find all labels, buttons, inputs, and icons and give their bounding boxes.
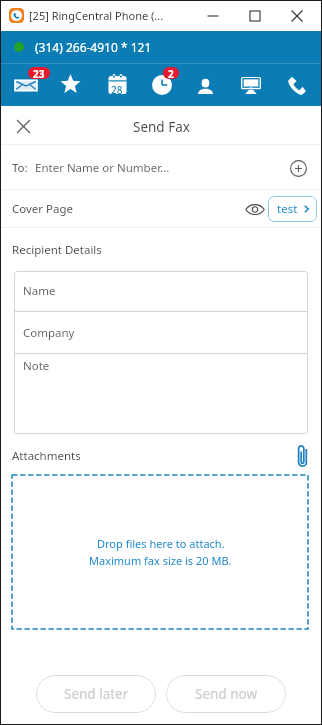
button[interactable]: Attach file	[291, 445, 313, 467]
button[interactable]: Phone	[281, 64, 312, 106]
button[interactable]: Contacts	[190, 64, 221, 106]
staticText: test	[277, 201, 298, 217]
button[interactable]: Recent	[146, 64, 178, 106]
staticText: Send later	[64, 685, 129, 703]
staticText: Note	[23, 358, 50, 374]
button[interactable]: Favorites	[53, 64, 88, 106]
staticText: [25] RingCentral Phone (...	[29, 8, 164, 23]
staticText: Cover Page	[12, 201, 74, 217]
staticText: 23	[33, 67, 45, 79]
button[interactable]: Note	[14, 354, 308, 434]
button[interactable]: Send now	[166, 675, 286, 713]
button[interactable]: Drop files here to attach.	[12, 475, 308, 629]
button[interactable]: Close	[276, 0, 318, 31]
staticText: 2	[168, 67, 174, 79]
staticText: Attachments	[12, 448, 81, 464]
button[interactable]: Maximize	[234, 0, 276, 31]
button[interactable]: Cover Page	[0, 190, 322, 228]
staticText: Enter Name or Number...	[35, 160, 170, 176]
staticText: Maximum fax size is 20 MB.	[89, 553, 232, 568]
button[interactable]: Minimize	[192, 0, 234, 31]
staticText: To:	[12, 160, 28, 176]
button[interactable]: To:	[0, 145, 322, 190]
button[interactable]: Preview cover page	[243, 198, 267, 220]
button[interactable]: Close	[11, 114, 35, 138]
button[interactable]: Meetings	[235, 64, 267, 106]
button[interactable]: Messages	[9, 64, 43, 106]
staticText: Name	[23, 283, 56, 299]
staticText: Drop files here to attach.	[97, 536, 225, 551]
button[interactable]: Send later	[36, 675, 156, 713]
staticText: Send now	[195, 685, 258, 703]
button[interactable]: Calendar	[101, 64, 134, 106]
staticText: Recipient Details	[12, 242, 102, 258]
staticText: 28	[111, 83, 123, 97]
staticText: Send Fax	[133, 118, 190, 136]
staticText: Company	[23, 325, 75, 341]
button[interactable]: Company	[14, 312, 308, 353]
staticText: (314) 266-4910 * 121	[35, 39, 152, 55]
button[interactable]: Add recipient	[288, 158, 308, 178]
button[interactable]: test	[268, 196, 317, 222]
button[interactable]: Name	[14, 271, 308, 311]
